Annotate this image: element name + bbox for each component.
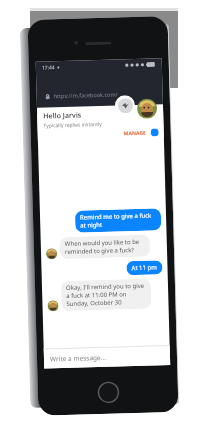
staticText: Typically replies instantly [43, 121, 103, 129]
button[interactable]: Messenger chat [115, 95, 135, 116]
other: Messenger [151, 128, 159, 136]
button[interactable]: Okay, I'll remind you to give a fuck at … [61, 279, 152, 311]
button[interactable]: Write a message... [44, 345, 170, 369]
button[interactable]: Remind me to give a fuck at night [75, 208, 161, 233]
staticText: Remind me to give a fuck at night [80, 211, 156, 229]
staticText: Write a message... [50, 353, 106, 363]
button[interactable]: Profile avatar [137, 98, 157, 119]
button[interactable]: When would you like to be reminded to gi… [60, 235, 150, 259]
staticText: 17:44 [42, 64, 55, 72]
staticText: When would you like to be reminded to gi… [65, 238, 145, 256]
staticText: https://m.facebook.com/ [54, 90, 118, 99]
staticText: Okay, I'll remind you to give a fuck at … [66, 282, 146, 308]
button[interactable]: MANAGE [124, 128, 159, 137]
button[interactable]: Home [97, 380, 120, 404]
staticText: Hello Jarvis [43, 110, 82, 122]
other: Bot avatar [46, 248, 57, 259]
staticText: At 11 pm [131, 263, 158, 272]
staticText: MANAGE [124, 130, 147, 137]
other: Bot avatar [47, 300, 59, 311]
button[interactable]: At 11 pm [126, 260, 163, 275]
